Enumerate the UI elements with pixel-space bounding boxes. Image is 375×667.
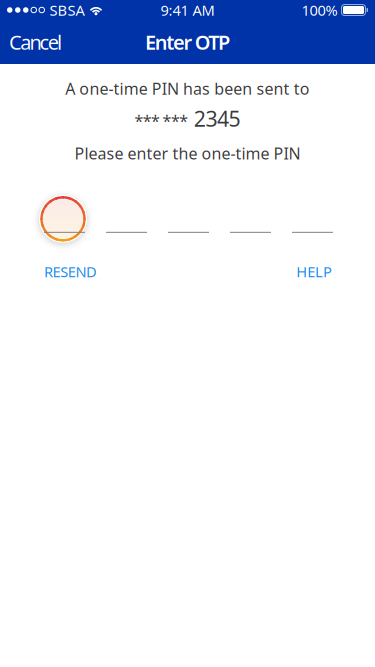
staticText: SBSA (49, 0, 84, 20)
staticText: *** *** (134, 110, 188, 131)
staticText: Cancel (9, 29, 62, 55)
staticText: A one-time PIN has been sent to (65, 78, 310, 99)
staticText: 2345 (188, 104, 241, 132)
staticText: RESEND (44, 262, 97, 281)
button[interactable]: Cancel (0, 20, 71, 64)
button[interactable]: HELP (296, 262, 332, 281)
staticText: HELP (296, 262, 332, 281)
staticText: 9:41 AM (160, 0, 214, 20)
staticText: Enter OTP (145, 29, 230, 55)
button[interactable]: RESEND (44, 262, 97, 281)
staticText: Please enter the one-time PIN (74, 143, 300, 164)
staticText: 100% (301, 0, 337, 20)
